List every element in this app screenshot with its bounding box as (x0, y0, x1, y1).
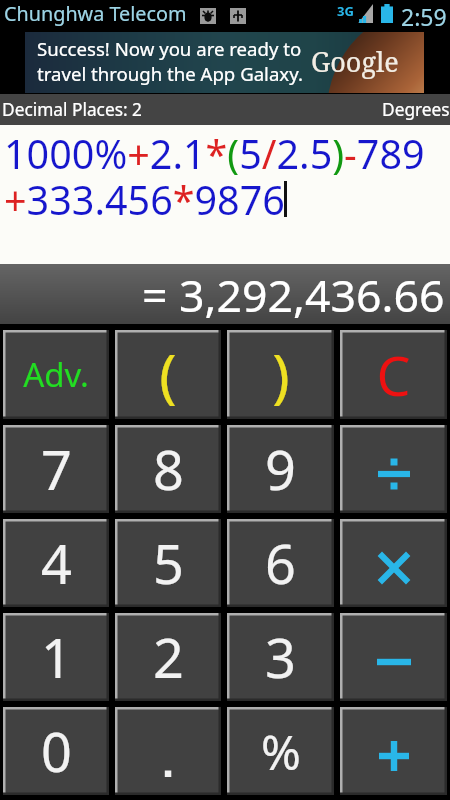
staticText: 2 (153, 620, 184, 694)
staticText: Chunghwa Telecom (4, 0, 187, 27)
button[interactable]: ) (227, 330, 334, 419)
button[interactable]: 9 (227, 425, 334, 513)
staticText: 5 (153, 526, 184, 600)
button[interactable]: Decimal point (115, 707, 221, 795)
button[interactable]: 0 (3, 707, 109, 795)
other: Debug (200, 8, 216, 24)
staticText: Decimal Places: 2 (2, 98, 142, 122)
button[interactable]: 3 (227, 613, 334, 701)
button[interactable]: Add (340, 707, 447, 795)
button[interactable]: Subtract (340, 613, 447, 701)
staticText: 3 (265, 620, 296, 694)
staticText: 7 (41, 432, 72, 506)
button[interactable]: 6 (227, 519, 334, 607)
button[interactable]: 8 (115, 425, 221, 513)
button[interactable]: ( (115, 330, 221, 419)
staticText: +333.456*9876 (4, 173, 285, 227)
staticText: 8 (153, 432, 184, 506)
staticText: travel through the App Galaxy. (37, 61, 303, 86)
button[interactable]: 7 (3, 425, 109, 513)
staticText: 9 (265, 432, 296, 506)
staticText: 1000%+2.1*(5/2.5)-789 (4, 127, 425, 181)
button[interactable]: 4 (3, 519, 109, 607)
button[interactable]: C (340, 330, 447, 419)
staticText: = 3,292,436.66 (142, 264, 445, 324)
staticText: ) (272, 335, 290, 414)
staticText: ( (159, 335, 177, 414)
other: USB (230, 8, 246, 24)
button[interactable]: Adv. (3, 330, 109, 419)
staticText: 0 (41, 714, 72, 788)
button[interactable]: 2 (115, 613, 221, 701)
staticText: 4 (41, 526, 72, 600)
staticText: Degrees (382, 98, 450, 122)
staticText: C (376, 338, 411, 412)
staticText: Google (311, 43, 399, 80)
staticText: Adv. (23, 352, 89, 397)
button[interactable]: % (227, 707, 334, 795)
staticText: 6 (265, 526, 296, 600)
staticText: Success! Now you are ready to (37, 36, 302, 61)
staticText: % (261, 719, 301, 784)
button[interactable]: Success! Now you are ready to (25, 32, 424, 93)
staticText: 3G (337, 2, 354, 20)
button[interactable]: 1 (3, 613, 109, 701)
button[interactable]: 5 (115, 519, 221, 607)
staticText: 2:59 (401, 1, 447, 30)
button[interactable]: Divide (340, 425, 447, 513)
staticText: 1 (41, 620, 72, 694)
button[interactable]: Multiply (340, 519, 447, 607)
